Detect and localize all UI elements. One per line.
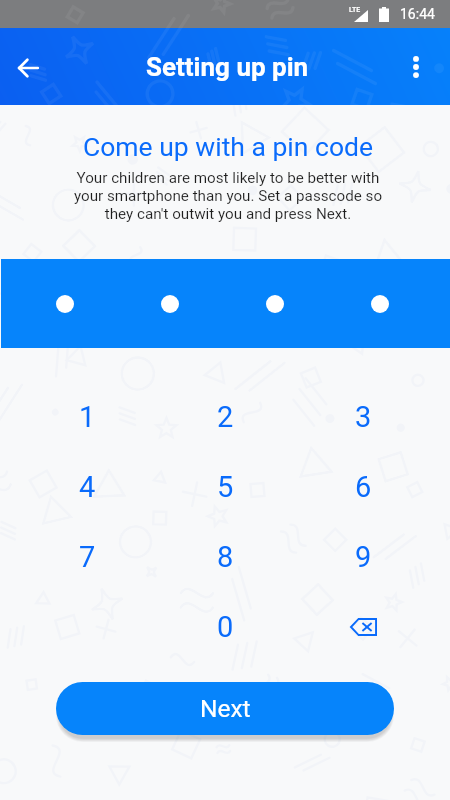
staticText: Your children are most likely to be bett… <box>67 169 389 223</box>
button[interactable]: 5 <box>194 456 256 518</box>
staticText: 8 <box>217 540 234 574</box>
button[interactable]: 8 <box>194 526 256 588</box>
button[interactable]: 7 <box>56 526 118 588</box>
button[interactable]: 9 <box>332 526 394 588</box>
button[interactable]: 1 <box>56 386 118 448</box>
button[interactable]: Next <box>56 682 394 735</box>
staticText: 9 <box>355 540 372 574</box>
staticText: 16:44 <box>400 6 435 22</box>
button[interactable]: Backspace <box>332 596 394 658</box>
button[interactable]: 4 <box>56 456 118 518</box>
button[interactable]: More options <box>398 49 434 85</box>
staticText: 7 <box>79 540 96 574</box>
staticText: Next <box>200 694 251 723</box>
button[interactable]: 3 <box>332 386 394 448</box>
button[interactable]: 6 <box>332 456 394 518</box>
staticText: Setting up pin <box>146 52 309 82</box>
staticText: 5 <box>217 470 234 504</box>
staticText: 0 <box>217 610 234 644</box>
staticText: 2 <box>217 400 234 434</box>
staticText: 1 <box>79 400 96 434</box>
button[interactable]: Back <box>9 49 47 87</box>
staticText: Come up with a pin code <box>3 131 450 162</box>
staticText: 3 <box>355 400 372 434</box>
staticText: 4 <box>79 470 96 504</box>
button[interactable]: 0 <box>194 596 256 658</box>
button[interactable]: 2 <box>194 386 256 448</box>
staticText: 6 <box>355 470 372 504</box>
staticText: LTE <box>349 6 361 14</box>
